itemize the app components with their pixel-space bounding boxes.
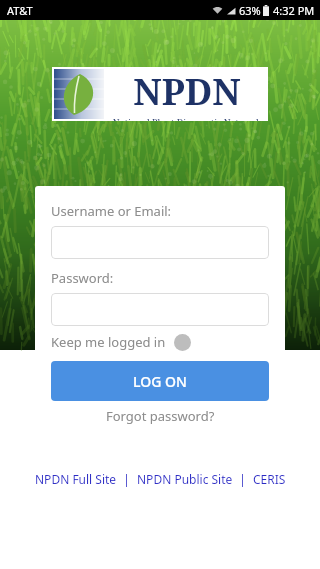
button[interactable] <box>51 293 269 326</box>
staticText: 4:32 PM <box>273 3 315 18</box>
staticText: AT&T <box>7 3 33 18</box>
button[interactable]: Keep me logged in <box>51 333 191 351</box>
staticText: Forgot password? <box>106 407 215 425</box>
staticText: NPDN <box>108 67 266 116</box>
staticText: Username or Email: <box>51 202 172 220</box>
button[interactable]: LOG ON <box>51 361 269 401</box>
staticText: Password: <box>51 269 114 287</box>
staticText: | <box>233 471 253 487</box>
staticText: LOG ON <box>133 372 187 391</box>
staticText: 63% <box>239 3 261 18</box>
other: Keep me logged in toggle <box>174 334 191 351</box>
button[interactable]: CERIS <box>253 471 286 487</box>
staticText: | <box>117 471 137 487</box>
staticText: NPDN Public Site <box>137 471 233 487</box>
button[interactable]: NPDN Full Site <box>35 471 117 487</box>
staticText: National Plant Diagnostic Network <box>108 116 266 121</box>
button[interactable]: NPDN Public Site <box>137 471 233 487</box>
staticText: NPDN Full Site <box>35 471 117 487</box>
staticText: Keep me logged in <box>51 333 166 351</box>
button[interactable]: Forgot password? <box>51 407 269 425</box>
button[interactable] <box>51 226 269 259</box>
staticText: CERIS <box>253 471 286 487</box>
